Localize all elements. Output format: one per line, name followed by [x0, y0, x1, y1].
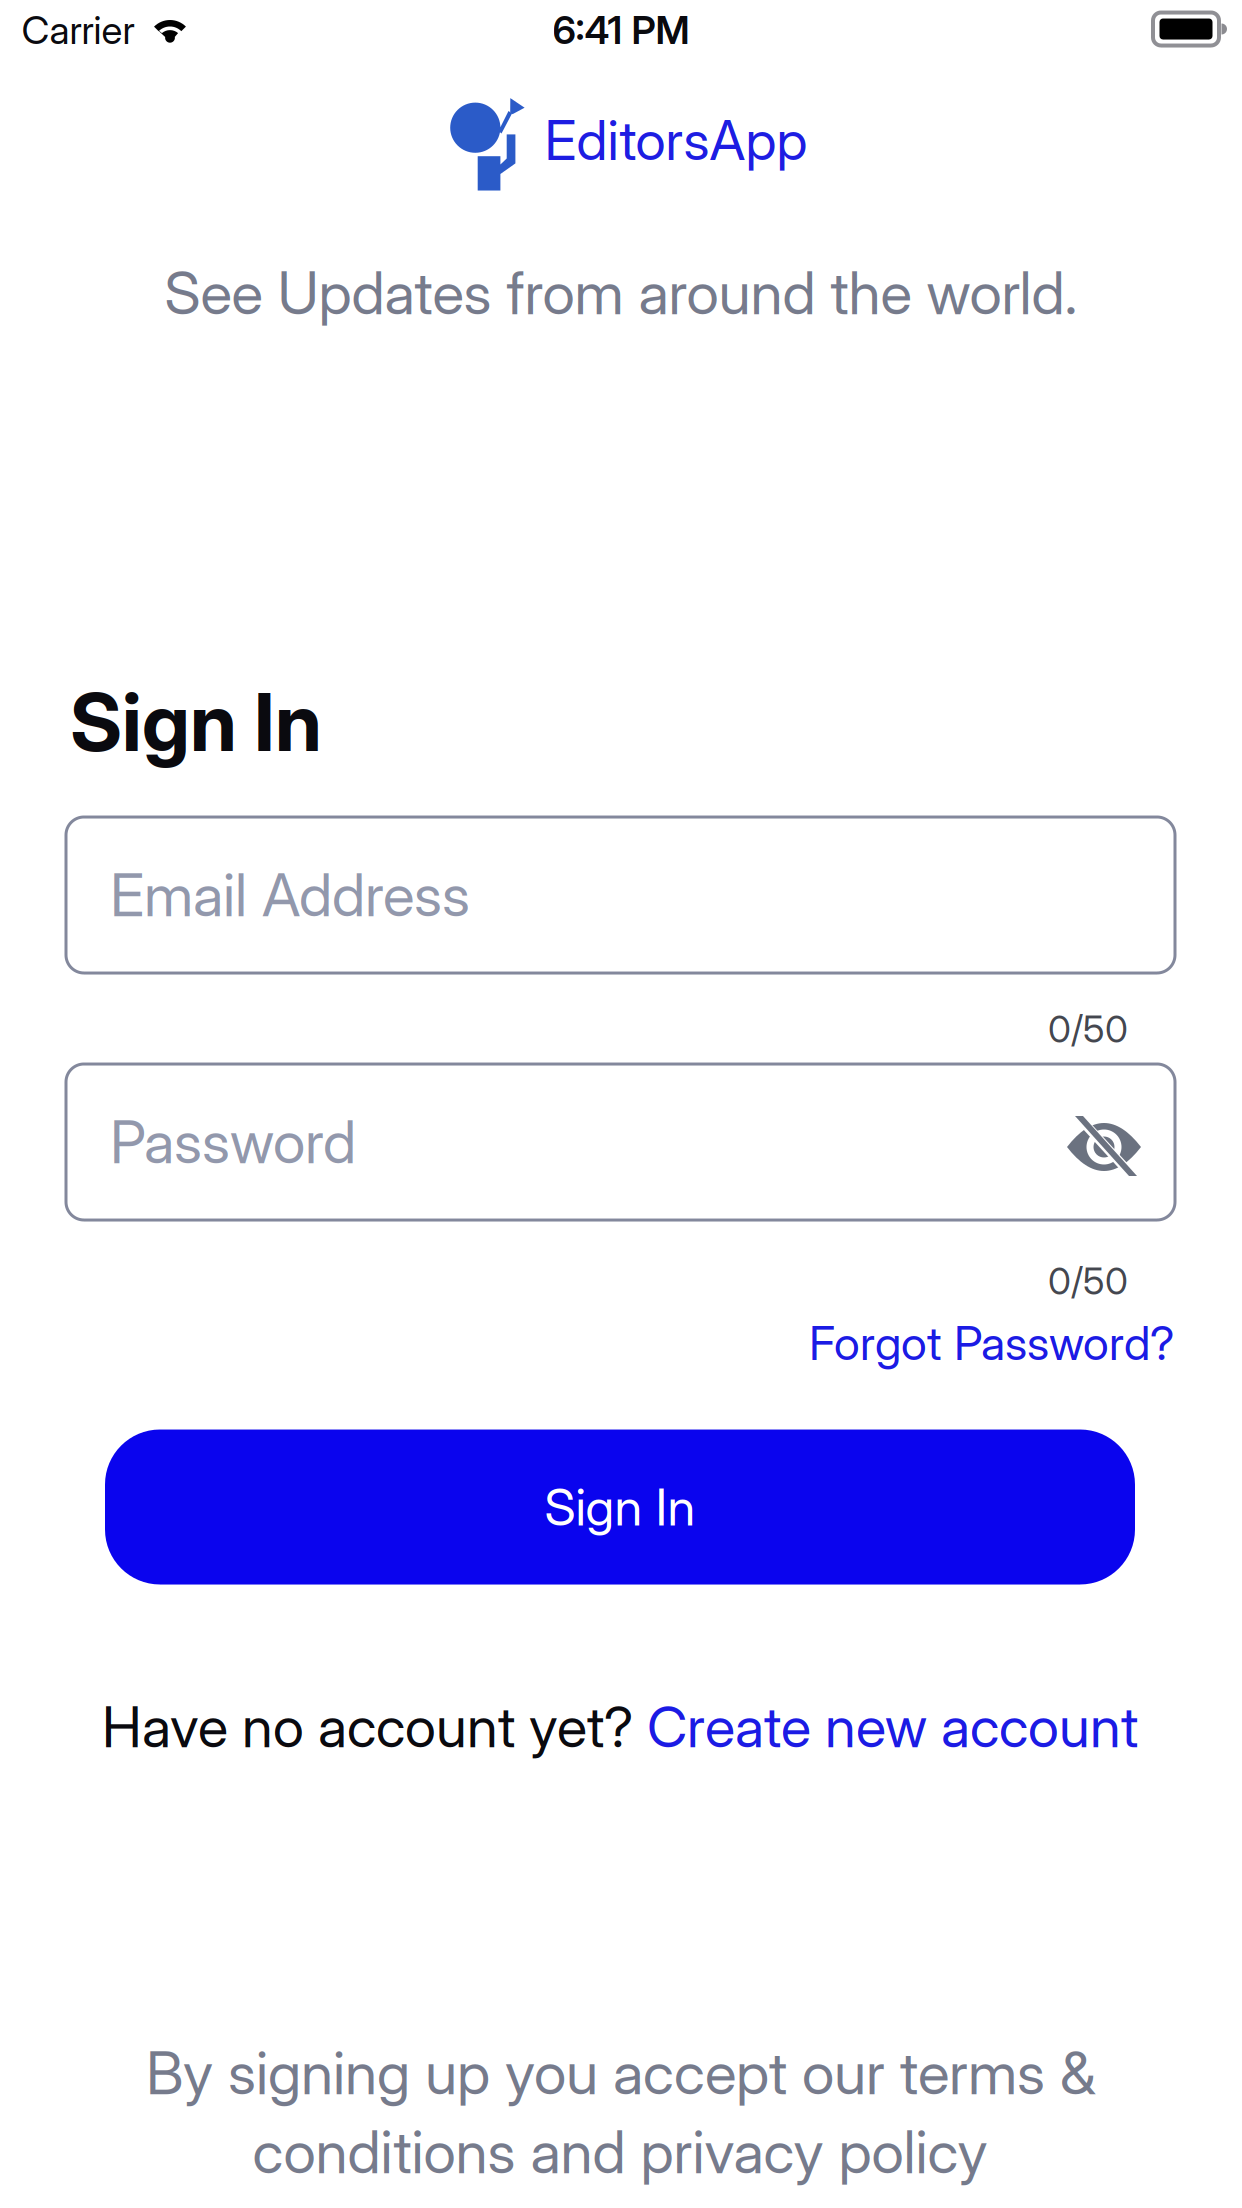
button[interactable]: Show password [1065, 1114, 1143, 1180]
button[interactable]: Forgot Password? [809, 1315, 1174, 1371]
staticText: Sign In [544, 1477, 695, 1537]
staticText: EditorsApp [544, 108, 807, 172]
staticText: Password [110, 1107, 356, 1177]
staticText: 0/50 [1048, 1259, 1128, 1303]
staticText: Email Address [110, 860, 470, 930]
staticText: Create new account [647, 1694, 1138, 1760]
staticText: Carrier [21, 7, 134, 53]
staticText: By signing up you accept our terms & [146, 2038, 1096, 2108]
staticText: See Updates from around the world. [164, 258, 1077, 328]
staticText: 6:41 PM [552, 7, 689, 53]
staticText: Sign In [70, 675, 322, 769]
button[interactable]: Create new account [647, 1694, 1138, 1760]
button[interactable]: Sign In [105, 1429, 1135, 1584]
staticText: 0/50 [1048, 1007, 1128, 1051]
staticText: conditions and privacy policy [252, 2117, 987, 2187]
staticText: Have no account yet? [102, 1694, 647, 1760]
staticText: Forgot Password? [809, 1315, 1174, 1371]
